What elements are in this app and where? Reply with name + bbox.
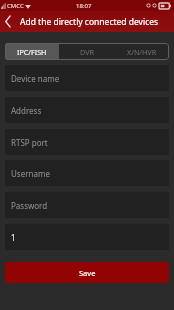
staticText: DVR bbox=[80, 47, 94, 57]
staticText: IPC/FISH bbox=[17, 47, 47, 57]
staticText: X/N/HVR bbox=[127, 47, 157, 57]
button[interactable]: 1 bbox=[5, 224, 169, 250]
button[interactable]: RTSP port bbox=[5, 129, 169, 155]
staticText: Save bbox=[79, 268, 96, 278]
button[interactable]: Password bbox=[5, 192, 169, 218]
button[interactable]: Save bbox=[5, 262, 169, 283]
button[interactable]: Back bbox=[0, 11, 16, 32]
staticText: RTSP port bbox=[11, 137, 48, 148]
button[interactable]: Address bbox=[5, 97, 169, 123]
button[interactable]: Device name bbox=[5, 65, 169, 91]
button[interactable]: Username bbox=[5, 160, 169, 186]
staticText: Username bbox=[11, 168, 50, 179]
staticText: Password bbox=[11, 200, 48, 211]
staticText: CMCC bbox=[7, 2, 24, 10]
staticText: Device name bbox=[11, 73, 60, 84]
button[interactable]: IPC/FISH bbox=[5, 43, 59, 60]
button[interactable]: X/N/HVR bbox=[114, 43, 169, 60]
staticText: Address bbox=[11, 105, 42, 116]
staticText: Add the directly connected devices bbox=[20, 16, 159, 28]
staticText: 1 bbox=[11, 232, 16, 243]
button[interactable]: DVR bbox=[59, 43, 114, 60]
staticText: 18:07 bbox=[76, 2, 92, 10]
